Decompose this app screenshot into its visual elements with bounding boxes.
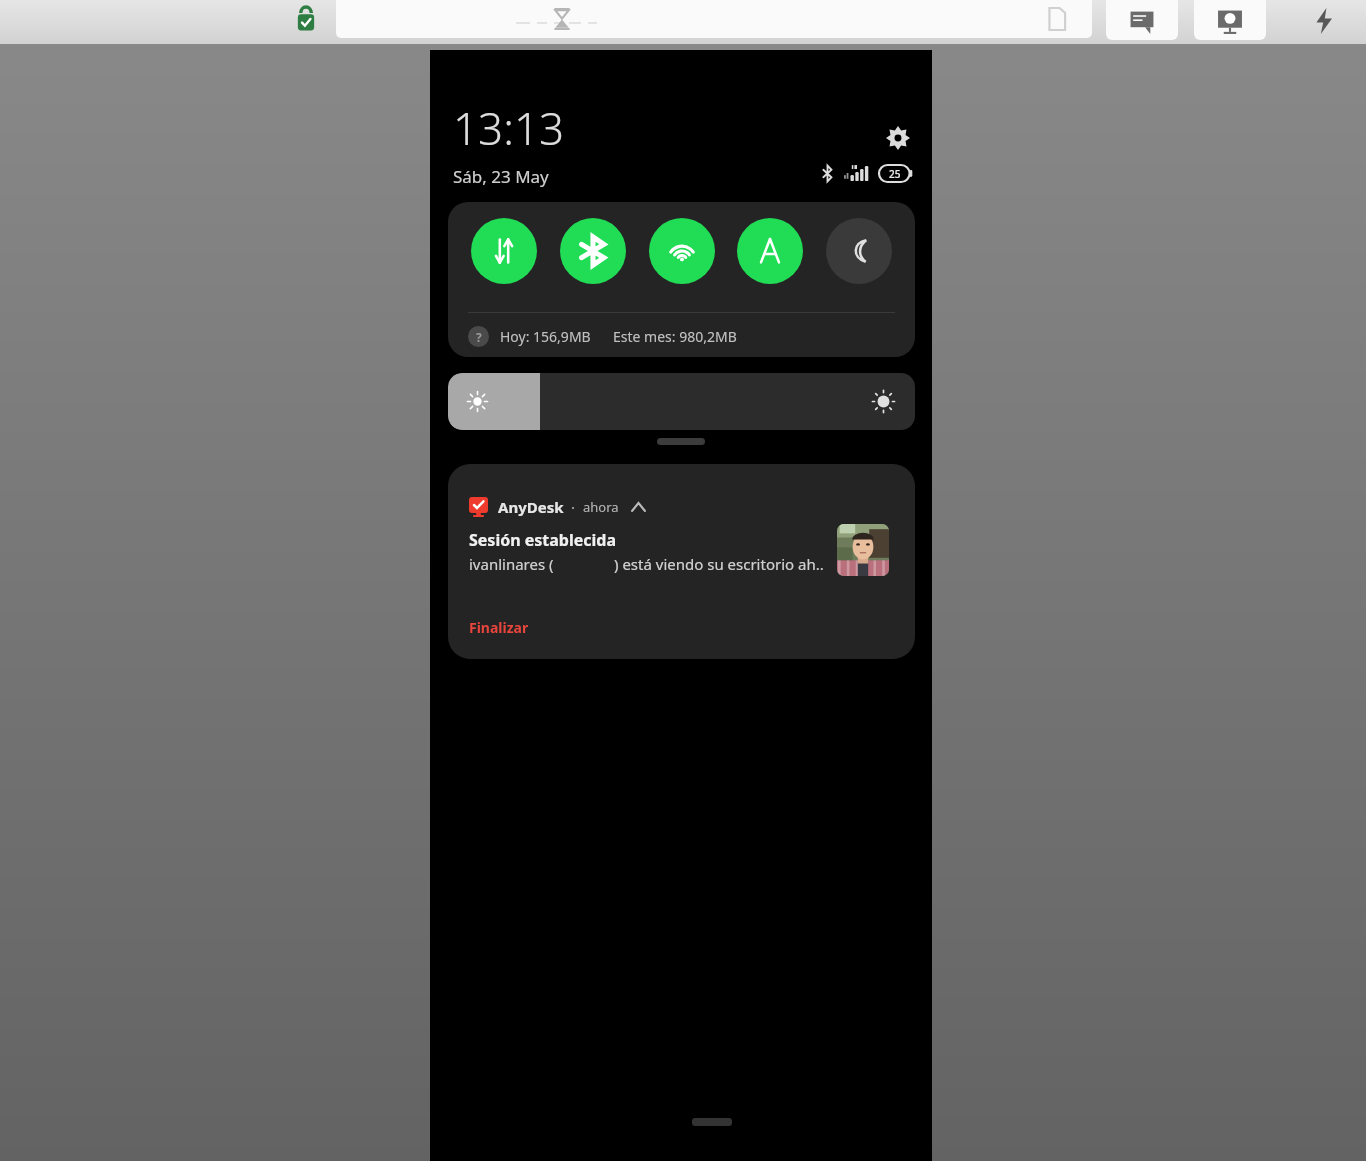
button[interactable]: Finalizar [462,614,536,641]
button[interactable]: Wi-Fi [649,218,715,284]
button[interactable]: Expand quick settings [657,438,705,445]
staticText: Este mes: 980,2MB [613,327,737,346]
button[interactable]: Collapse notification [628,497,648,517]
button[interactable]: Mobile data [471,218,537,284]
staticText: ) está viendo su escritorio ah.. [614,554,824,574]
button[interactable]: Brightness [448,373,915,430]
staticText: 13:13 [453,98,565,158]
button[interactable]: Secure connection [292,2,320,36]
button[interactable]: Settings [878,118,918,158]
button[interactable]: AnyDesk [448,464,915,659]
staticText: 25 [889,167,901,181]
staticText: ahora [583,498,619,516]
button[interactable]: Auto brightness [737,218,803,284]
button[interactable]: Quick actions [1302,2,1346,40]
button[interactable]: Data usage help [468,326,489,347]
staticText: AnyDesk [498,497,564,517]
staticText: Sesión establecida [469,529,617,551]
staticText: Finalizar [469,618,529,637]
button[interactable]: Screen share [1194,0,1266,40]
staticText: ivanlinares ( [469,554,554,574]
button[interactable]: Comments [1106,0,1178,40]
button[interactable]: Do not disturb [826,218,892,284]
staticText: Sáb, 23 May [453,165,549,188]
staticText: ? [476,329,482,345]
staticText: Hoy: 156,9MB [500,327,591,346]
staticText: · [571,497,576,517]
button[interactable]: Contact photo [837,524,889,576]
button[interactable] [336,0,1092,38]
button[interactable]: Bluetooth [560,218,626,284]
